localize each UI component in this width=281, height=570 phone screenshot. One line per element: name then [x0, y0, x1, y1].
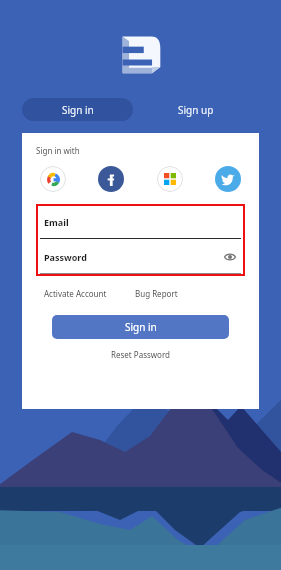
staticText: Reset Password — [111, 349, 170, 360]
button[interactable]: Sign in — [22, 98, 133, 121]
button[interactable]: Sign in with Facebook — [98, 166, 124, 192]
staticText: Sign up — [178, 103, 214, 117]
staticText: Email — [44, 216, 69, 228]
staticText: Activate Account — [44, 288, 107, 299]
staticText: Sign in — [62, 103, 94, 117]
staticText: Password — [44, 251, 87, 263]
button[interactable]: Show password — [223, 250, 237, 264]
staticText: Sign in — [125, 320, 157, 334]
button[interactable]: Sign in with Twitter — [215, 166, 241, 192]
button[interactable]: Sign in with Google — [40, 166, 66, 192]
button[interactable]: Bug Report — [133, 286, 180, 301]
button[interactable]: Sign up — [133, 98, 259, 121]
button[interactable]: Password — [40, 239, 241, 274]
button[interactable]: Sign in — [52, 315, 229, 339]
button[interactable]: Email — [40, 204, 241, 239]
staticText: Sign in with — [36, 145, 80, 156]
button[interactable]: Reset Password — [109, 347, 172, 362]
button[interactable]: Activate Account — [42, 286, 109, 301]
button[interactable]: Sign in with Microsoft — [157, 166, 183, 192]
staticText: Bug Report — [135, 288, 178, 299]
